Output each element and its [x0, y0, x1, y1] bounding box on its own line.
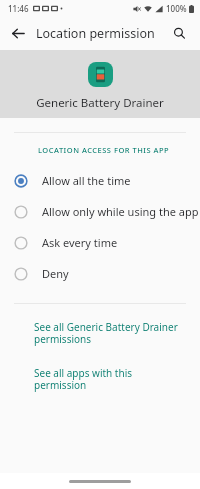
staticText: Deny: [42, 266, 69, 281]
staticText: 11:46: [8, 3, 29, 14]
staticText: Allow only while using the app: [42, 204, 199, 219]
button[interactable]: See all Generic Battery Drainer permissi…: [0, 318, 200, 348]
staticText: Location permission: [36, 25, 155, 42]
staticText: 100%: [166, 3, 187, 14]
button[interactable]: Deny: [0, 258, 200, 289]
button[interactable]: Allow only while using the app: [0, 196, 200, 227]
staticText: Generic Battery Drainer: [36, 95, 164, 111]
button[interactable]: See all apps with this permission: [0, 364, 200, 394]
staticText: LOCATION ACCESS FOR THIS APP: [38, 145, 170, 155]
staticText: Allow all the time: [42, 173, 131, 188]
button[interactable]: Allow all the time: [0, 165, 200, 196]
staticText: See all Generic Battery Drainer permissi…: [34, 320, 178, 346]
button[interactable]: Ask every time: [0, 227, 200, 258]
staticText: See all apps with this permission: [34, 366, 186, 392]
button[interactable]: Back: [4, 19, 32, 47]
staticText: Ask every time: [42, 235, 118, 250]
button[interactable]: Search: [166, 20, 192, 46]
